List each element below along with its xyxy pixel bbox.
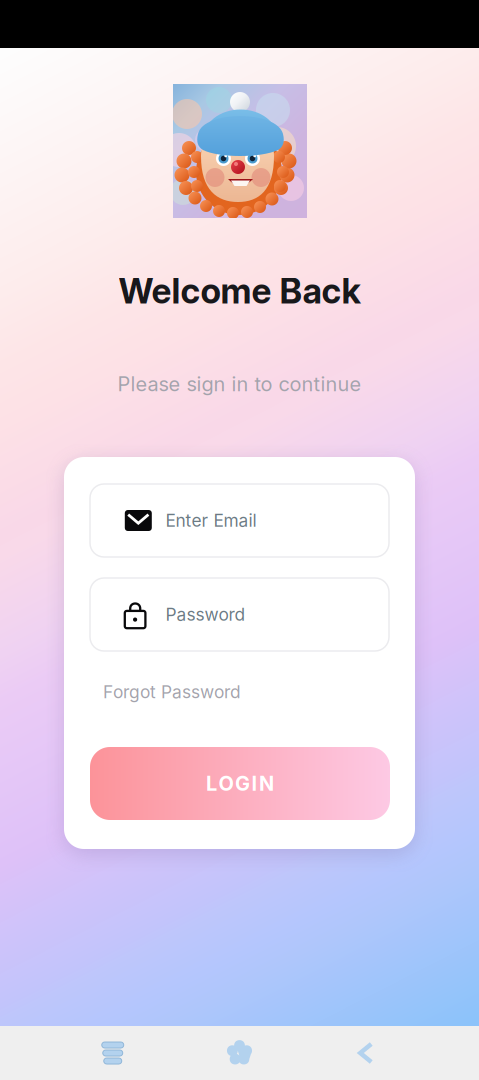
button[interactable]: Back (352, 1040, 380, 1066)
staticText: Please sign in to continue (117, 372, 361, 396)
button[interactable]: Forgot Password (103, 679, 263, 705)
button[interactable]: LOGIN (90, 747, 390, 820)
staticText: LOGIN (206, 771, 274, 796)
staticText: Welcome Back (118, 270, 360, 312)
button[interactable]: Enter Email (90, 484, 389, 557)
staticText: Forgot Password (103, 681, 241, 702)
button[interactable]: Recent apps (99, 1040, 127, 1066)
staticText: Password (165, 604, 245, 625)
button[interactable]: Home (225, 1040, 253, 1066)
button[interactable]: Password (90, 578, 389, 651)
staticText: Enter Email (165, 510, 256, 531)
